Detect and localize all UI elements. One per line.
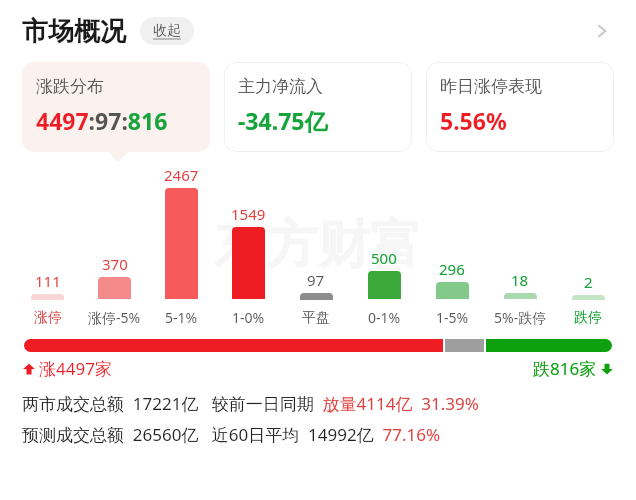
button[interactable]: 收起: [140, 17, 194, 45]
staticText: 111: [35, 271, 61, 291]
staticText: 370: [102, 254, 128, 274]
staticText: 收起: [153, 22, 181, 40]
staticText: 5.56%: [440, 105, 507, 136]
staticText: 296: [439, 259, 465, 279]
staticText: 主力净流入: [238, 76, 323, 97]
staticText: 97: [307, 270, 325, 290]
staticText: -34.75亿: [238, 105, 328, 136]
staticText: 涨停: [34, 309, 62, 327]
staticText: 涨4497家: [39, 357, 112, 380]
staticText: 涨跌分布: [36, 76, 104, 97]
button[interactable]: More: [582, 11, 622, 51]
staticText: 5%-跌停: [494, 308, 547, 327]
staticText: 昨日涨停表现: [440, 76, 542, 97]
button[interactable]: 主力净流入: [224, 62, 412, 152]
staticText: 4497:97:816: [36, 105, 168, 136]
staticText: 两市成交总额 17221亿 较前一日同期 放量4114亿 31.39%: [22, 392, 479, 415]
staticText: 平盘: [302, 309, 330, 327]
staticText: 跌停: [574, 309, 602, 327]
staticText: 1549: [231, 204, 266, 224]
button[interactable]: 昨日涨停表现: [426, 62, 614, 152]
staticText: 1-0%: [232, 308, 265, 327]
staticText: 跌816家: [533, 357, 597, 380]
staticText: 18: [511, 270, 529, 290]
staticText: 5-1%: [165, 308, 198, 327]
staticText: 涨停-5%: [88, 308, 141, 327]
button[interactable]: 涨跌分布: [22, 62, 210, 152]
staticText: 预测成交总额 26560亿 近60日平均 14992亿 77.16%: [22, 423, 441, 446]
staticText: 1-5%: [436, 308, 469, 327]
staticText: 市场概况: [22, 15, 126, 48]
staticText: 0-1%: [368, 308, 401, 327]
staticText: 2: [584, 272, 593, 292]
staticText: 500: [371, 248, 397, 268]
staticText: 2467: [164, 165, 199, 185]
staticText: 东方财富: [214, 212, 422, 278]
